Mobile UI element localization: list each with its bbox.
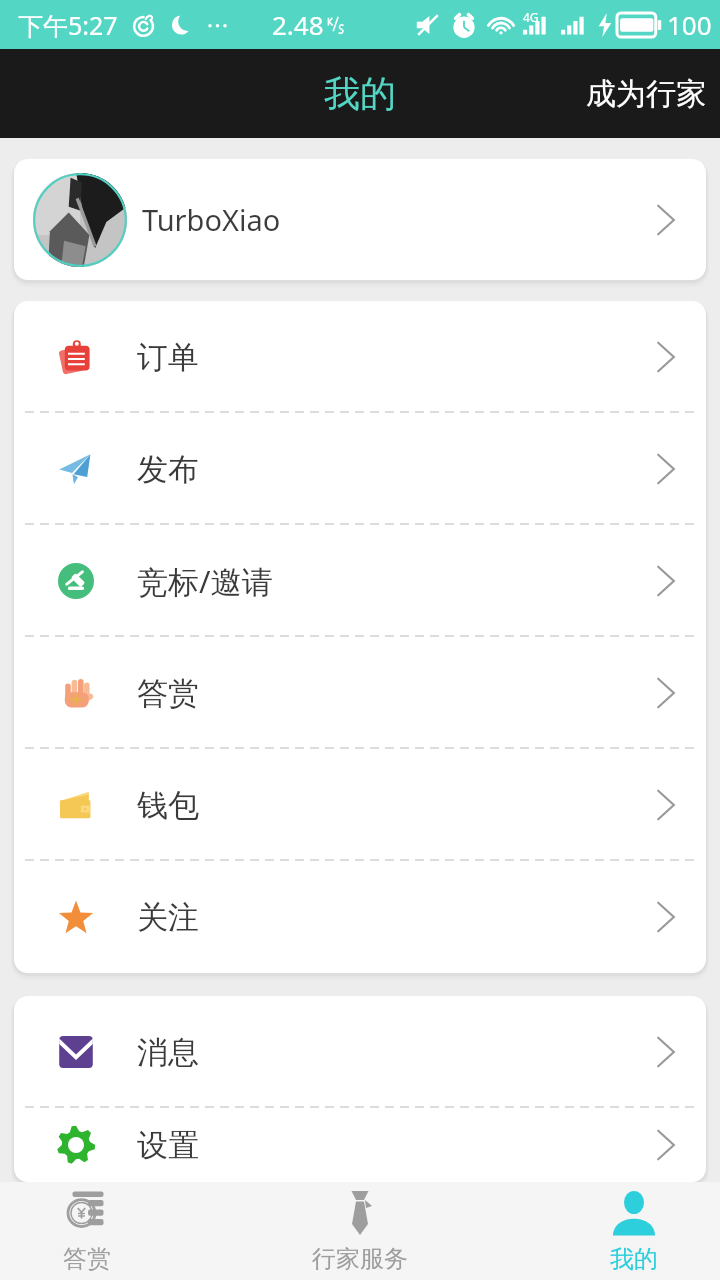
staticText: 钱包 <box>137 786 199 825</box>
button[interactable]: 钱包 <box>14 749 706 861</box>
staticText: 我的 <box>324 71 396 116</box>
button[interactable]: 设置 <box>14 1108 706 1182</box>
button[interactable]: 订单 <box>14 301 706 413</box>
staticText: 答赏 <box>63 1244 111 1274</box>
staticText: TurboXiao <box>142 200 281 239</box>
staticText: 行家服务 <box>312 1244 408 1274</box>
staticText: 下午5:27 <box>18 8 118 42</box>
staticText: 4G <box>523 9 539 25</box>
staticText: 关注 <box>137 898 199 937</box>
staticText: 消息 <box>137 1033 199 1072</box>
button[interactable]: 行家服务 <box>291 1182 428 1280</box>
staticText: 发布 <box>137 450 199 489</box>
staticText: 答赏 <box>137 674 199 713</box>
staticText: 成为行家 <box>586 75 706 113</box>
staticText: 订单 <box>137 338 199 377</box>
button[interactable]: 竞标/邀请 <box>14 525 706 637</box>
button[interactable]: 答赏 <box>18 1182 155 1280</box>
staticText: 竞标/邀请 <box>137 560 273 602</box>
button[interactable]: 答赏 <box>14 637 706 749</box>
staticText: 我的 <box>610 1244 658 1274</box>
button[interactable]: 关注 <box>14 861 706 973</box>
button[interactable]: 发布 <box>14 413 706 525</box>
button[interactable]: 消息 <box>14 996 706 1108</box>
staticText: 2.48 <box>272 7 324 42</box>
staticText: 100 <box>667 7 712 42</box>
button[interactable]: Profile TurboXiao <box>14 159 706 280</box>
button[interactable]: 我的 <box>565 1182 702 1280</box>
button[interactable]: 成为行家 <box>570 55 720 133</box>
staticText: 设置 <box>137 1126 199 1165</box>
